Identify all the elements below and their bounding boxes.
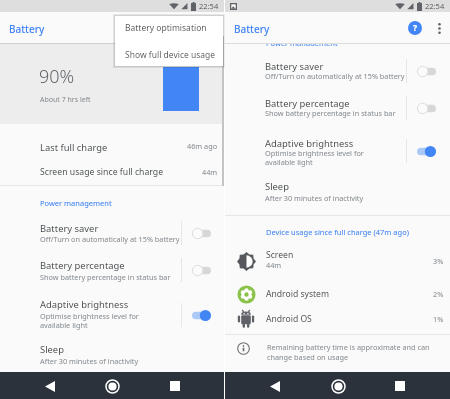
button[interactable]: Switch on [413, 142, 439, 160]
staticText: Show full device usage [125, 49, 216, 61]
staticText: 44m [202, 167, 218, 177]
staticText: Sleep [265, 180, 289, 193]
staticText: After 30 minutes of inactivity [40, 356, 139, 366]
button[interactable] [225, 281, 450, 307]
button[interactable]: Battery [225, 12, 450, 42]
staticText: 22:54 [199, 1, 219, 11]
staticText: About 7 hrs left [40, 95, 91, 105]
staticText: Power management [40, 198, 112, 208]
button[interactable]: Information [237, 342, 250, 355]
staticText: Battery [234, 22, 270, 36]
button[interactable]: Recents [387, 373, 413, 399]
button[interactable] [225, 173, 450, 203]
staticText: Android OS [266, 313, 312, 325]
staticText: Sleep [40, 343, 64, 356]
staticText: Adaptive brightness [265, 137, 354, 150]
button[interactable]: Switch off [413, 62, 439, 80]
staticText: 22:54 [425, 1, 445, 11]
button[interactable]: Home [99, 373, 125, 399]
button[interactable]: Help [405, 18, 425, 38]
button[interactable]: Back [37, 373, 63, 399]
staticText: 1% [433, 314, 444, 324]
staticText: Screen [266, 249, 294, 261]
button[interactable]: Home [325, 373, 351, 399]
button[interactable] [0, 252, 224, 288]
staticText: Show battery percentage in status bar [265, 108, 396, 118]
button[interactable] [225, 90, 450, 126]
staticText: Optimise brightness level for available … [40, 311, 139, 331]
staticText: Android system [266, 288, 330, 300]
button[interactable] [225, 306, 450, 332]
button[interactable]: Battery optimisation [115, 16, 223, 41]
staticText: Battery percentage [40, 259, 125, 272]
staticText: 2% [433, 289, 444, 299]
staticText: After 30 minutes of inactivity [265, 193, 364, 203]
button[interactable] [0, 215, 224, 251]
button[interactable]: Back [262, 373, 288, 399]
button[interactable]: Switch off [188, 224, 214, 242]
button[interactable]: Show full device usage [115, 42, 223, 67]
button[interactable] [225, 130, 450, 166]
staticText: Adaptive brightness [40, 298, 129, 311]
staticText: Battery optimisation [125, 22, 207, 34]
button[interactable]: More options [429, 18, 449, 38]
staticText: Screen usage since full charge [40, 166, 164, 178]
button[interactable]: Switch off [188, 261, 214, 279]
staticText: 46m ago [187, 141, 218, 151]
button[interactable] [0, 291, 224, 327]
staticText: Optimise brightness level for available … [265, 148, 364, 168]
staticText: Power management [266, 38, 338, 46]
staticText: 44m [266, 260, 282, 270]
button[interactable] [225, 242, 450, 268]
staticText: Off/Turn on automatically at 15% battery [40, 234, 180, 244]
staticText: Battery saver [40, 222, 99, 235]
staticText: Device usage since full charge (47m ago) [266, 227, 409, 237]
staticText: ? [413, 22, 418, 34]
button[interactable]: Last full charge [0, 133, 224, 156]
staticText: Show battery percentage in status bar [40, 272, 171, 282]
button[interactable] [225, 53, 450, 89]
button[interactable]: Battery [0, 12, 224, 44]
staticText: Last full charge [40, 141, 108, 154]
button[interactable]: Switch off [413, 99, 439, 117]
button[interactable]: Switch on [188, 306, 214, 324]
staticText: Remaining battery time is approximate an… [267, 342, 437, 362]
staticText: Battery [9, 22, 45, 36]
button[interactable]: Screen usage since full charge [0, 159, 224, 182]
button[interactable] [0, 336, 224, 366]
staticText: 90% [39, 64, 75, 89]
staticText: Off/Turn on automatically at 15% battery [265, 71, 405, 81]
button[interactable]: Recents [162, 373, 188, 399]
staticText: Battery percentage [265, 97, 350, 110]
staticText: Battery saver [265, 60, 324, 73]
staticText: 3% [433, 256, 444, 266]
